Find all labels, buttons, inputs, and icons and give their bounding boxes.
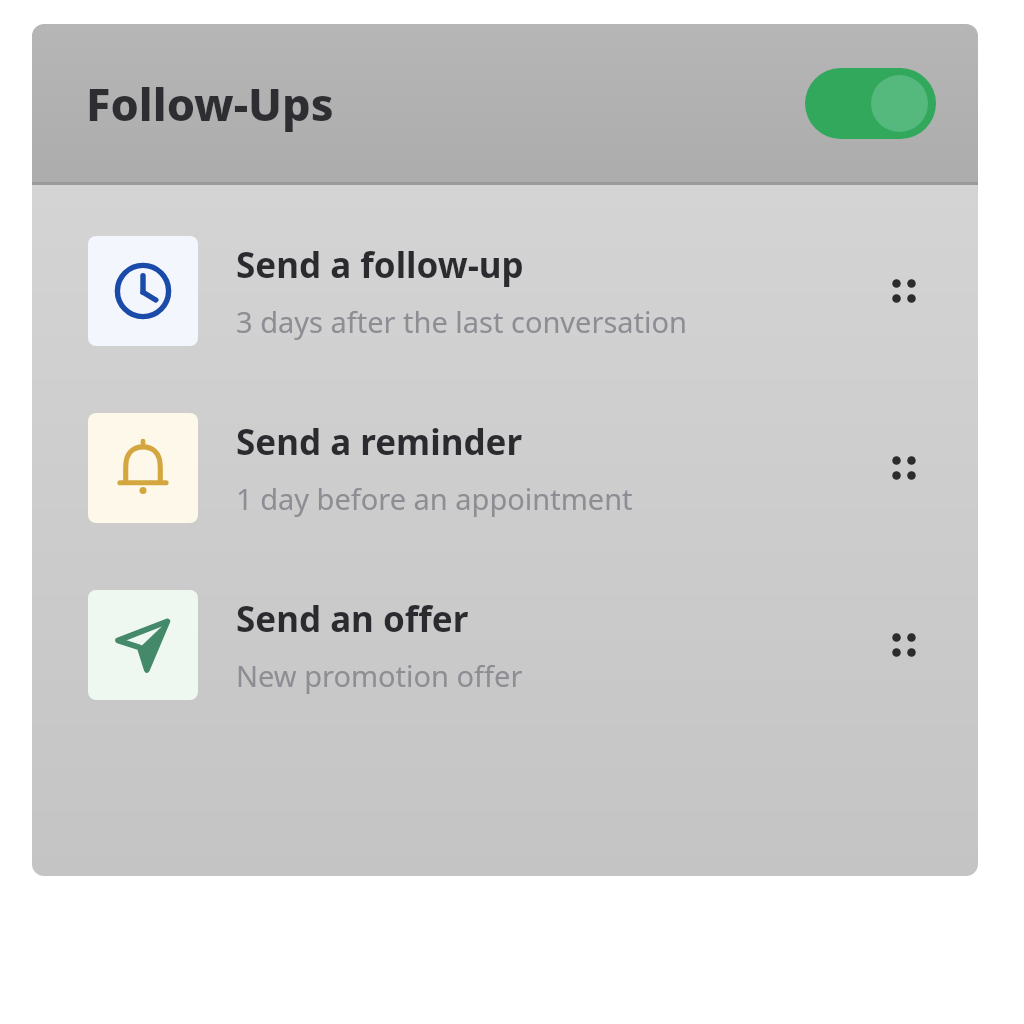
button[interactable]: Send a reminder (32, 413, 978, 523)
button[interactable]: Reorder (876, 617, 932, 673)
staticText: Send an offer (236, 595, 469, 643)
staticText: 3 days after the last conversation (236, 302, 688, 341)
staticText: 1 day before an appointment (236, 479, 633, 518)
staticText: Follow-Ups (86, 73, 334, 134)
staticText: New promotion offer (236, 656, 523, 695)
button[interactable]: Reorder (876, 440, 932, 496)
button[interactable]: Send a follow-up (32, 236, 978, 346)
button[interactable]: Send an offer (32, 590, 978, 700)
staticText: Send a follow-up (236, 241, 524, 289)
staticText: Send a reminder (236, 418, 523, 466)
button[interactable]: Reorder (876, 263, 932, 319)
button[interactable]: Toggle follow-ups (805, 68, 936, 139)
